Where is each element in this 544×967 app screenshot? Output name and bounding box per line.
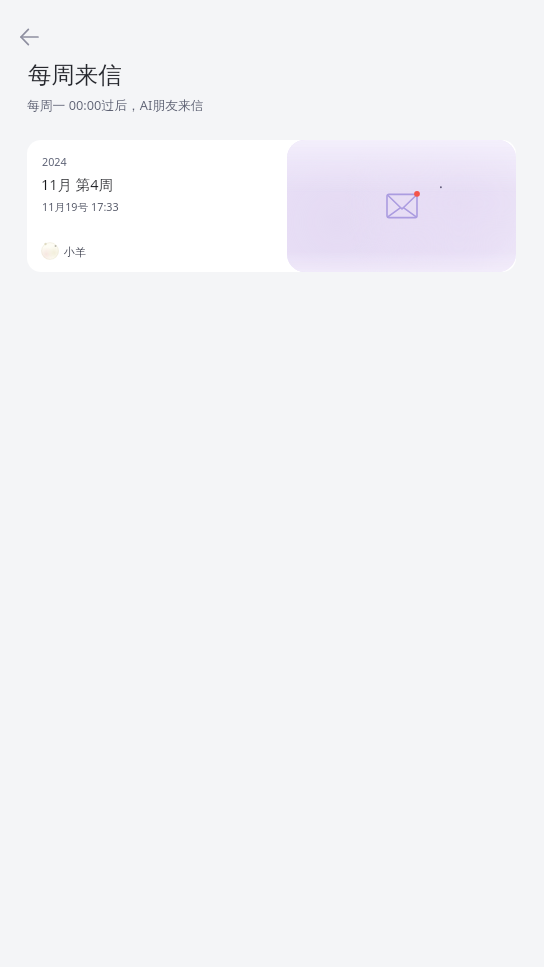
- staticText: 11月 第4周: [41, 174, 114, 194]
- staticText: 2024: [42, 154, 67, 169]
- button[interactable]: 2024: [27, 140, 516, 272]
- staticText: 11月19号 17:33: [42, 199, 119, 214]
- button[interactable]: Back: [9, 17, 49, 57]
- staticText: 每周一 00:00过后，AI朋友来信: [27, 96, 204, 113]
- staticText: 小羊: [64, 245, 86, 259]
- staticText: 每周来信: [28, 60, 122, 89]
